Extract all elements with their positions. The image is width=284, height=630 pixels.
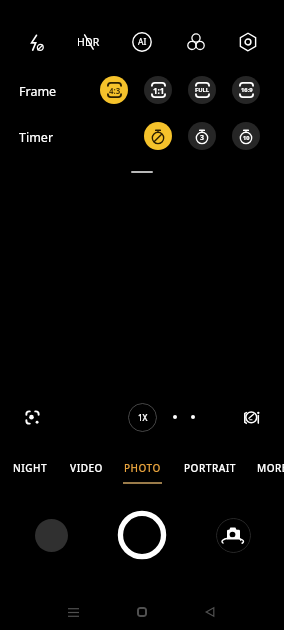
button[interactable]: Recents [53, 592, 93, 630]
staticText: AI [138, 36, 147, 48]
button[interactable]: Timer 3 seconds [188, 122, 216, 150]
button[interactable]: Back [190, 592, 230, 630]
button[interactable]: Beauty [238, 403, 266, 431]
button[interactable]: Gallery [35, 519, 68, 552]
staticText: NIGHT [13, 461, 48, 475]
button[interactable]: 1X [128, 403, 157, 432]
button[interactable]: Flash off [14, 20, 58, 64]
button[interactable]: Frame 16:9 [232, 76, 260, 104]
button[interactable]: PORTRAIT [176, 454, 244, 492]
button[interactable]: Frame full [188, 76, 216, 104]
button[interactable]: Scene detection [18, 403, 46, 431]
staticText: PHOTO [124, 461, 161, 475]
button[interactable]: Zoom 2x [173, 415, 177, 419]
button[interactable]: Filters [174, 20, 218, 64]
staticText: MORE [257, 461, 284, 475]
staticText: Frame [19, 83, 57, 100]
button[interactable]: Settings [226, 20, 270, 64]
staticText: PORTRAIT [184, 461, 236, 475]
button[interactable]: Timer 10 seconds [232, 122, 260, 150]
button[interactable]: PHOTO [108, 454, 176, 492]
staticText: VIDEO [70, 461, 103, 475]
button[interactable]: NIGHT [0, 454, 64, 492]
button[interactable]: Home [122, 592, 162, 630]
staticText: 16:9 [241, 86, 253, 94]
staticText: HDR [77, 35, 100, 49]
button[interactable]: Timer off [144, 122, 172, 150]
button[interactable]: AI scene detection [120, 20, 164, 64]
button[interactable]: MORE [238, 454, 284, 492]
staticText: 4:3 [109, 85, 121, 96]
button[interactable]: Frame 4:3 [100, 76, 128, 104]
button[interactable]: Switch camera [216, 518, 251, 553]
button[interactable]: Shutter [114, 507, 170, 563]
staticText: 3 [200, 133, 205, 143]
button[interactable]: Frame 1:1 [144, 76, 172, 104]
staticText: 1:1 [153, 85, 165, 96]
button[interactable]: VIDEO [52, 454, 120, 492]
button[interactable]: HDR off [66, 20, 110, 64]
staticText: 1X [138, 412, 148, 423]
staticText: FULL [195, 86, 210, 94]
staticText: Timer [19, 129, 54, 146]
button[interactable]: Zoom 5x [191, 415, 195, 419]
staticText: 10 [243, 134, 250, 142]
button[interactable]: Collapse settings [131, 171, 153, 173]
